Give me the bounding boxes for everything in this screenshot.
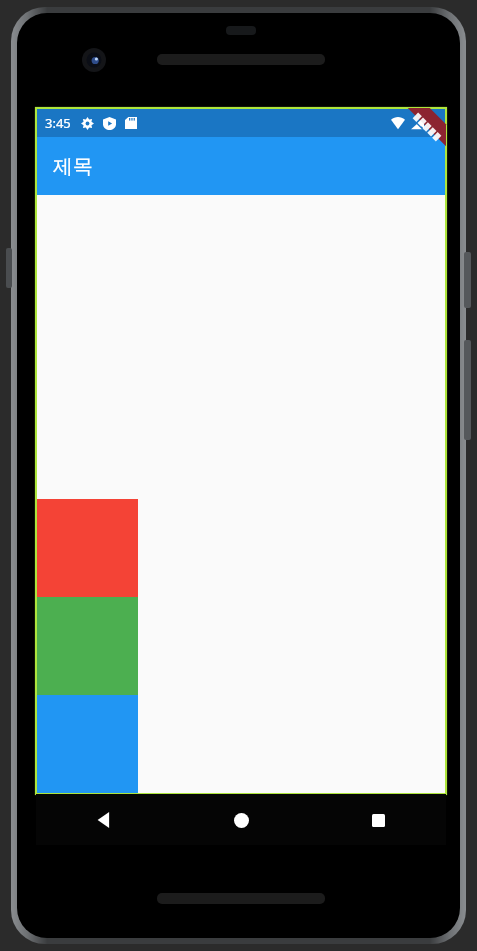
staticText: 제목 — [53, 154, 93, 179]
staticText: 3:45 — [45, 114, 71, 132]
button[interactable]: Home — [220, 799, 262, 841]
button[interactable]: 제목 — [37, 137, 445, 195]
button[interactable]: Back — [83, 799, 125, 841]
button[interactable]: Recent apps — [357, 799, 399, 841]
